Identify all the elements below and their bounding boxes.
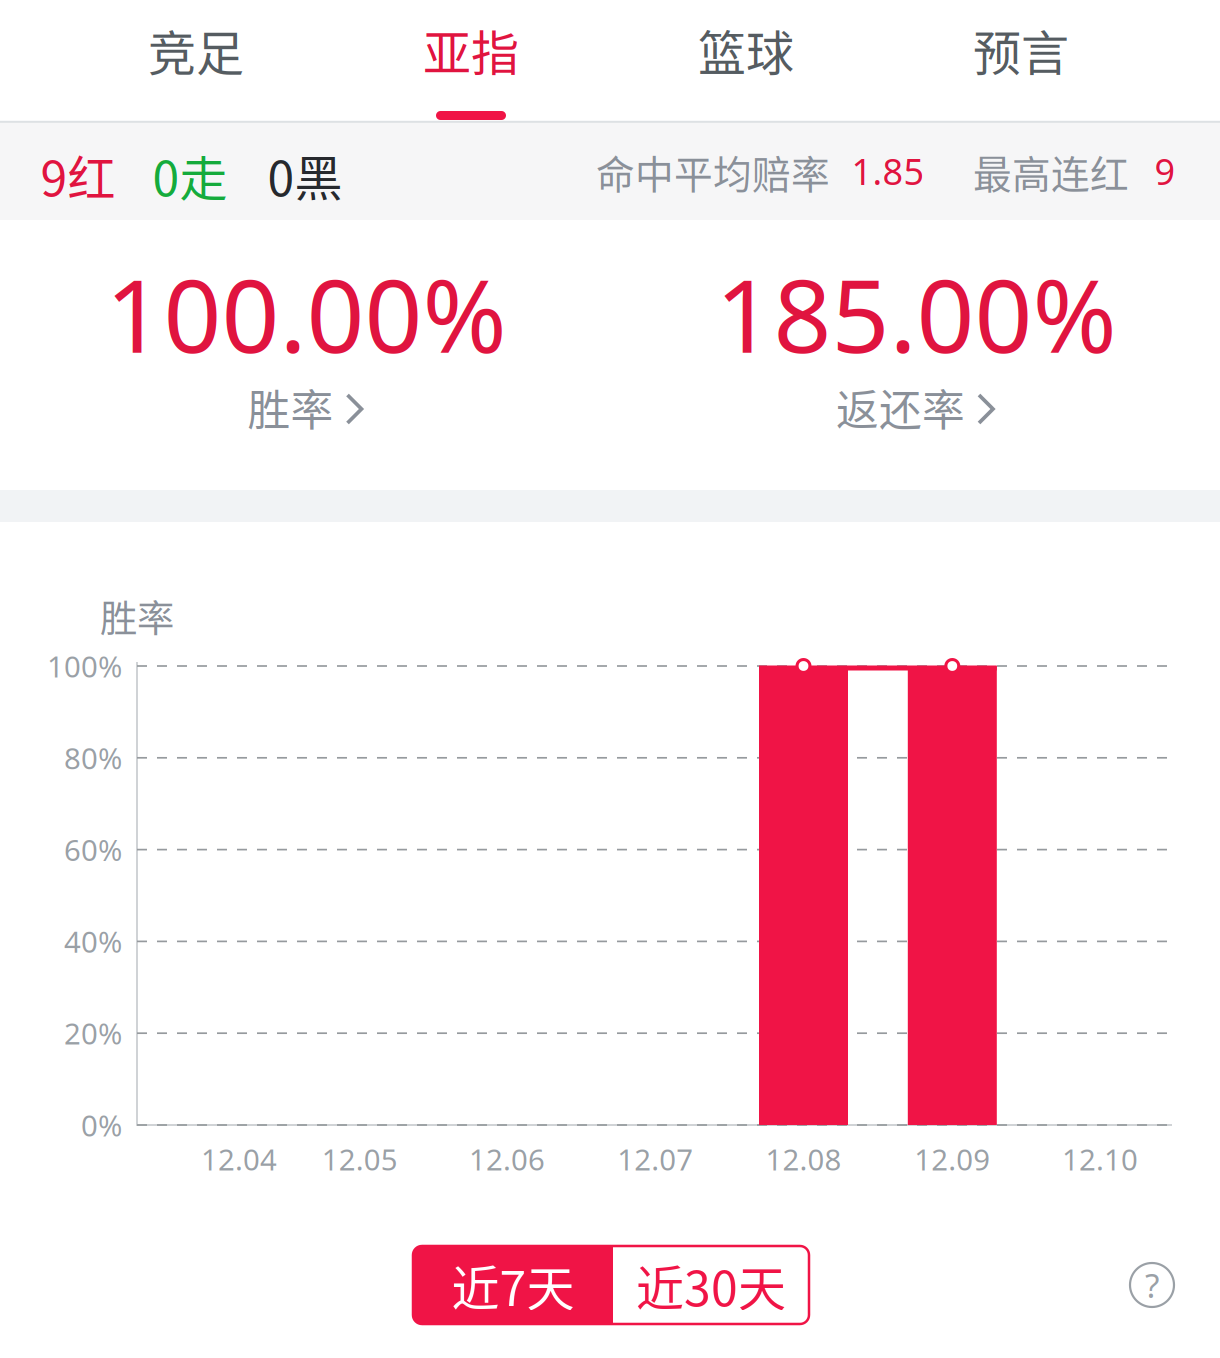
staticText: 40% bbox=[64, 922, 122, 961]
staticText: 9 bbox=[1154, 147, 1175, 195]
staticText: 100% bbox=[47, 646, 122, 685]
button[interactable]: 近30天 bbox=[613, 1246, 809, 1324]
button[interactable]: 预言 bbox=[883, 0, 1158, 121]
button[interactable]: 185.00% bbox=[611, 260, 1220, 450]
staticText: 12.10 bbox=[1062, 1139, 1138, 1178]
staticText: 12.05 bbox=[322, 1139, 398, 1178]
staticText: 100.00% bbox=[105, 246, 506, 381]
staticText: 胜率 bbox=[247, 377, 333, 438]
staticText: 0% bbox=[81, 1105, 122, 1144]
button[interactable]: 近7天 bbox=[413, 1246, 613, 1324]
staticText: 1.85 bbox=[851, 147, 924, 195]
button[interactable]: 竞足 bbox=[58, 0, 333, 121]
button[interactable]: 100.00% bbox=[1, 260, 611, 450]
button[interactable]: 帮助说明 bbox=[1117, 1250, 1187, 1320]
button[interactable]: 亚指 bbox=[333, 0, 608, 121]
staticText: 篮球 bbox=[698, 15, 794, 84]
staticText: 0黑 bbox=[267, 140, 342, 210]
staticText: 12.06 bbox=[469, 1139, 545, 1178]
staticText: 12.08 bbox=[765, 1139, 841, 1178]
staticText: 80% bbox=[64, 738, 122, 777]
staticText: 12.09 bbox=[914, 1139, 990, 1178]
staticText: ? bbox=[1145, 1263, 1159, 1307]
staticText: 近7天 bbox=[451, 1250, 574, 1320]
staticText: 竞足 bbox=[148, 15, 244, 84]
staticText: 返还率 bbox=[836, 377, 965, 438]
staticText: 0走 bbox=[152, 140, 227, 210]
staticText: 最高连红 bbox=[973, 144, 1129, 200]
staticText: 9红 bbox=[40, 140, 115, 210]
staticText: 185.00% bbox=[715, 246, 1116, 381]
staticText: 命中平均赔率 bbox=[596, 144, 830, 200]
staticText: 12.07 bbox=[617, 1139, 693, 1178]
staticText: 近30天 bbox=[636, 1250, 786, 1320]
staticText: 20% bbox=[64, 1014, 122, 1053]
staticText: 60% bbox=[64, 830, 122, 869]
staticText: 亚指 bbox=[423, 15, 519, 84]
button[interactable]: 篮球 bbox=[608, 0, 883, 121]
staticText: 预言 bbox=[973, 15, 1069, 84]
staticText: 胜率 bbox=[100, 589, 174, 643]
staticText: 12.04 bbox=[201, 1139, 277, 1178]
